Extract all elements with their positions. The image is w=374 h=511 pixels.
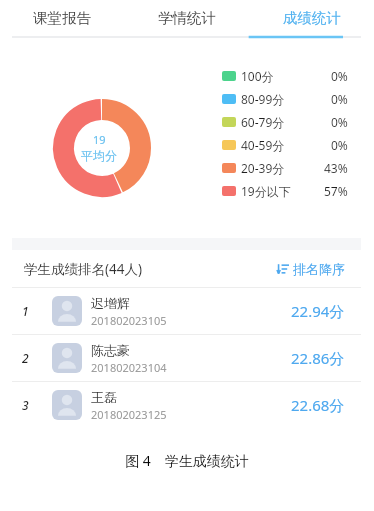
staticText: 排名降序	[293, 261, 345, 277]
staticText: 学生成绩排名(44人)	[24, 260, 143, 278]
staticText: 100分	[241, 68, 274, 84]
button[interactable]: 学情统计	[124, 0, 249, 36]
button[interactable]: 课堂报告	[0, 0, 124, 36]
staticText: 0%	[331, 137, 348, 153]
staticText: 3	[22, 397, 29, 413]
staticText: 201802023104	[91, 360, 167, 375]
staticText: 60-79分	[241, 114, 285, 130]
staticText: 0%	[331, 68, 348, 84]
staticText: 22.86分	[291, 348, 345, 368]
staticText: 201802023125	[91, 407, 167, 422]
staticText: 1	[22, 303, 29, 319]
staticText: 201802023105	[91, 313, 167, 328]
staticText: 0%	[331, 91, 348, 107]
staticText: 43%	[324, 160, 348, 176]
staticText: 图 4 学生成绩统计	[125, 451, 249, 470]
staticText: 学情统计	[158, 9, 216, 27]
staticText: 2	[22, 350, 29, 366]
other: 排名降序	[277, 263, 289, 275]
staticText: 成绩统计	[283, 9, 341, 27]
button[interactable]: 3	[0, 382, 374, 428]
staticText: 22.68分	[291, 395, 345, 415]
staticText: 80-99分	[241, 91, 285, 107]
staticText: 王磊	[91, 389, 117, 405]
staticText: 19	[93, 132, 106, 147]
staticText: 0%	[331, 114, 348, 130]
staticText: 迟增辉	[91, 295, 130, 311]
staticText: 课堂报告	[33, 9, 91, 27]
staticText: 陈志豪	[91, 342, 130, 358]
staticText: 平均分	[81, 148, 117, 163]
staticText: 19分以下	[241, 183, 291, 199]
staticText: 40-59分	[241, 137, 285, 153]
button[interactable]: 2	[0, 335, 374, 381]
button[interactable]: 1	[0, 288, 374, 334]
staticText: 22.94分	[291, 301, 345, 321]
button[interactable]: 排名降序	[277, 261, 345, 277]
button[interactable]: 成绩统计	[249, 0, 374, 36]
staticText: 20-39分	[241, 160, 285, 176]
staticText: 57%	[324, 183, 348, 199]
